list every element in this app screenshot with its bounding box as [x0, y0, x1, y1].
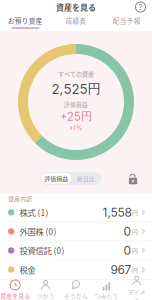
staticText: 2,525円 — [51, 80, 100, 97]
button[interactable]: ロック — [128, 172, 152, 184]
staticText: +25円 — [60, 109, 92, 123]
staticText: 円 — [132, 227, 138, 236]
staticText: つかう — [37, 291, 55, 300]
button[interactable]: 成績表 — [51, 14, 101, 31]
staticText: 評価損益 — [44, 174, 68, 183]
staticText: 1,558 — [102, 205, 131, 219]
staticText: つみたて — [94, 291, 118, 300]
staticText: 投資信託 (0) — [19, 244, 64, 256]
staticText: 前日比 — [77, 174, 95, 183]
staticText: 0 — [123, 224, 131, 239]
staticText: 成績表 — [65, 16, 86, 25]
staticText: 外国株 (0) — [19, 225, 56, 237]
button[interactable]: 税金 — [0, 260, 152, 279]
button[interactable]: 評価損益 — [41, 173, 71, 184]
staticText: 円 — [132, 265, 138, 274]
staticText: 税金 — [19, 264, 35, 276]
staticText: 資産を見る — [0, 291, 30, 300]
button[interactable]: 外国株 (0) — [0, 222, 152, 241]
staticText: お預り資産 — [8, 16, 43, 25]
button[interactable]: 配当予報 — [101, 14, 152, 31]
button[interactable]: マイメニュー — [122, 280, 152, 300]
staticText: すべての資産 — [58, 69, 94, 78]
button[interactable]: 資産を見る — [0, 280, 30, 300]
staticText: 株式 (1) — [19, 206, 48, 218]
staticText: そうだん — [64, 291, 88, 300]
staticText: マイメニュー — [128, 287, 146, 300]
button[interactable]: そうだん — [61, 280, 91, 300]
staticText: 資産を見る — [56, 1, 96, 13]
staticText: 円 — [132, 246, 138, 255]
button[interactable]: 前日比 — [71, 173, 100, 184]
button[interactable]: お預り資産 — [0, 14, 51, 31]
staticText: 配当予報 — [113, 16, 141, 25]
staticText: 資産内訳 — [8, 194, 32, 203]
staticText: 0 — [123, 243, 131, 258]
staticText: 967 — [110, 262, 131, 277]
button[interactable]: 投資信託 (0) — [0, 241, 152, 260]
button[interactable]: ヘルプ — [135, 0, 152, 13]
staticText: 評価損益 — [64, 100, 88, 108]
staticText: ? — [138, 2, 142, 12]
staticText: +1% — [69, 124, 83, 132]
button[interactable]: つかう — [30, 280, 61, 300]
button[interactable]: つみたて — [91, 280, 122, 300]
staticText: 円 — [132, 208, 138, 217]
button[interactable]: 株式 (1) — [0, 203, 152, 222]
